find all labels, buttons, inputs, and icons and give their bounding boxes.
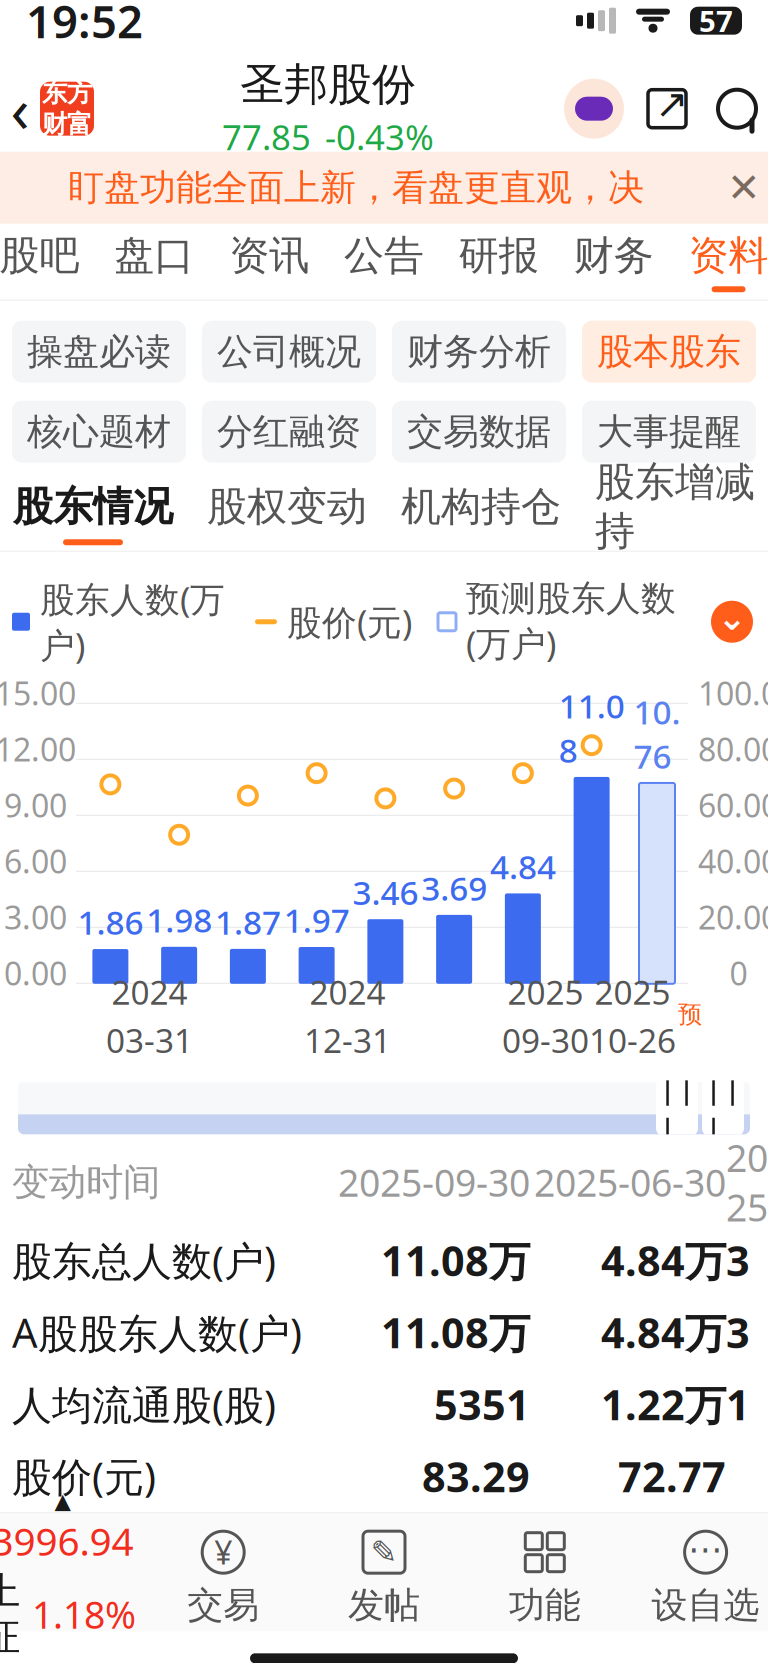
staticText: 20.00 (698, 896, 768, 938)
staticText: 40.00 (698, 840, 768, 882)
staticText: 11.08万 (381, 1305, 530, 1360)
staticText: 2024 (309, 970, 385, 1014)
button[interactable]: 展开 (708, 598, 756, 646)
staticText: 1.97 (284, 898, 350, 942)
staticText: 东方 (42, 78, 92, 109)
staticText: 股东人数(万户) (40, 576, 225, 668)
staticText: 1.22万 (601, 1377, 726, 1432)
staticText: 09-30 (502, 1018, 589, 1062)
button[interactable]: 公告 (327, 224, 441, 300)
staticText: 功能 (509, 1583, 581, 1627)
staticText: 研报 (459, 231, 539, 280)
staticText: 股东总人数(户) (12, 1234, 276, 1287)
staticText: 财务分析 (407, 330, 551, 374)
staticText: ✎ (370, 1534, 397, 1570)
staticText: 0 (729, 952, 747, 994)
button[interactable]: 关闭 (716, 160, 768, 216)
staticText: 股权变动 (207, 482, 367, 531)
staticText: 3.00 (4, 896, 67, 938)
staticText: 发帖 (348, 1583, 420, 1627)
staticText: 11.08万 (381, 1233, 530, 1288)
staticText: 9.00 (4, 784, 67, 826)
staticText: 1 (726, 1377, 750, 1432)
staticText: 3.46 (352, 870, 418, 914)
button[interactable]: ✎ (304, 1529, 464, 1627)
staticText: ||| (658, 1061, 696, 1153)
staticText: 2025- (726, 1133, 768, 1232)
staticText: ⌄ (717, 598, 746, 637)
staticText: 4.84万 (601, 1233, 726, 1288)
button[interactable]: 右滑块 (702, 1078, 744, 1136)
staticText: 预 (678, 1000, 702, 1029)
button[interactable]: 东方财富 (40, 82, 94, 136)
button[interactable]: 盘口 (97, 224, 212, 300)
button[interactable]: 搜索 (706, 78, 768, 140)
button[interactable]: 财务分析 (392, 321, 566, 383)
button[interactable]: 交易数据 (392, 401, 566, 463)
staticText: ✕ (727, 165, 761, 210)
staticText: 4.84万 (601, 1305, 726, 1360)
button[interactable]: ¥ (143, 1529, 304, 1627)
staticText: 交易 (187, 1583, 259, 1627)
staticText: 10.76 (633, 689, 680, 778)
button[interactable]: ▲ (0, 1489, 143, 1663)
staticText: 2025-06-30 (534, 1157, 726, 1207)
staticText: 资讯 (229, 231, 309, 280)
staticText: 0.00 (4, 952, 67, 994)
staticText: 股价(元) (287, 599, 412, 645)
staticText: 100.0 (698, 672, 768, 714)
button[interactable]: Back (0, 79, 40, 139)
staticText: 设自选 (652, 1583, 760, 1627)
staticText: ⋯ (688, 1529, 723, 1569)
button[interactable]: 大事提醒 (582, 401, 756, 463)
button[interactable]: ⋯ (625, 1529, 768, 1627)
staticText: ‹ (10, 68, 29, 149)
staticText: 股价(元) (12, 1450, 156, 1503)
staticText: 股本股东 (597, 330, 741, 374)
button[interactable]: 左滑块 (656, 1078, 698, 1136)
button[interactable]: 股东情况 (0, 477, 190, 551)
staticText: 1.18% (32, 1590, 136, 1639)
button[interactable]: 股权变动 (190, 477, 384, 551)
staticText: 77.85 (222, 114, 311, 160)
button[interactable]: 股本股东 (582, 321, 756, 383)
staticText: 57 (699, 1, 733, 40)
staticText: 1.86 (77, 900, 143, 944)
button[interactable]: 公司概况 (202, 321, 376, 383)
button[interactable]: 核心题材 (12, 401, 186, 463)
staticText: 上证 (0, 1568, 20, 1660)
staticText: 60.00 (698, 784, 768, 826)
button[interactable]: 资料 (671, 224, 768, 300)
staticText: ¥ (214, 1531, 232, 1573)
button[interactable]: 财务 (556, 224, 671, 300)
staticText: 19:52 (26, 0, 143, 51)
button[interactable]: 机构持仓 (384, 477, 578, 551)
staticText: 2025 (594, 970, 670, 1014)
staticText: ↗ (655, 81, 689, 126)
button[interactable]: 分享 (636, 78, 698, 140)
staticText: 03-31 (106, 1018, 193, 1062)
button[interactable]: 分红融资 (202, 401, 376, 463)
staticText: 圣邦股份 (240, 58, 416, 112)
button[interactable]: 操盘必读 (12, 321, 186, 383)
button[interactable]: 研报 (441, 224, 556, 300)
staticText: 交易数据 (407, 410, 551, 454)
button[interactable]: 股吧 (0, 224, 97, 300)
staticText: 分红融资 (217, 410, 361, 454)
staticText: 11.08 (559, 683, 625, 772)
staticText: 5351 (434, 1377, 530, 1432)
button[interactable]: 股东增减持 (578, 477, 768, 551)
button[interactable]: 功能 (464, 1529, 625, 1627)
staticText: 核心题材 (27, 410, 171, 454)
staticText: 15.00 (0, 672, 76, 714)
staticText: 3 (726, 1305, 750, 1360)
staticText: ||| (704, 1061, 742, 1153)
staticText: 3.69 (421, 866, 487, 910)
staticText: 变动时间 (12, 1159, 160, 1205)
staticText: 2025 (507, 970, 583, 1014)
button[interactable]: AI助手 (562, 77, 626, 141)
button[interactable]: 资讯 (212, 224, 327, 300)
staticText: 83.29 (422, 1449, 530, 1504)
staticText: 大事提醒 (597, 410, 741, 454)
staticText: 1.87 (215, 900, 281, 944)
